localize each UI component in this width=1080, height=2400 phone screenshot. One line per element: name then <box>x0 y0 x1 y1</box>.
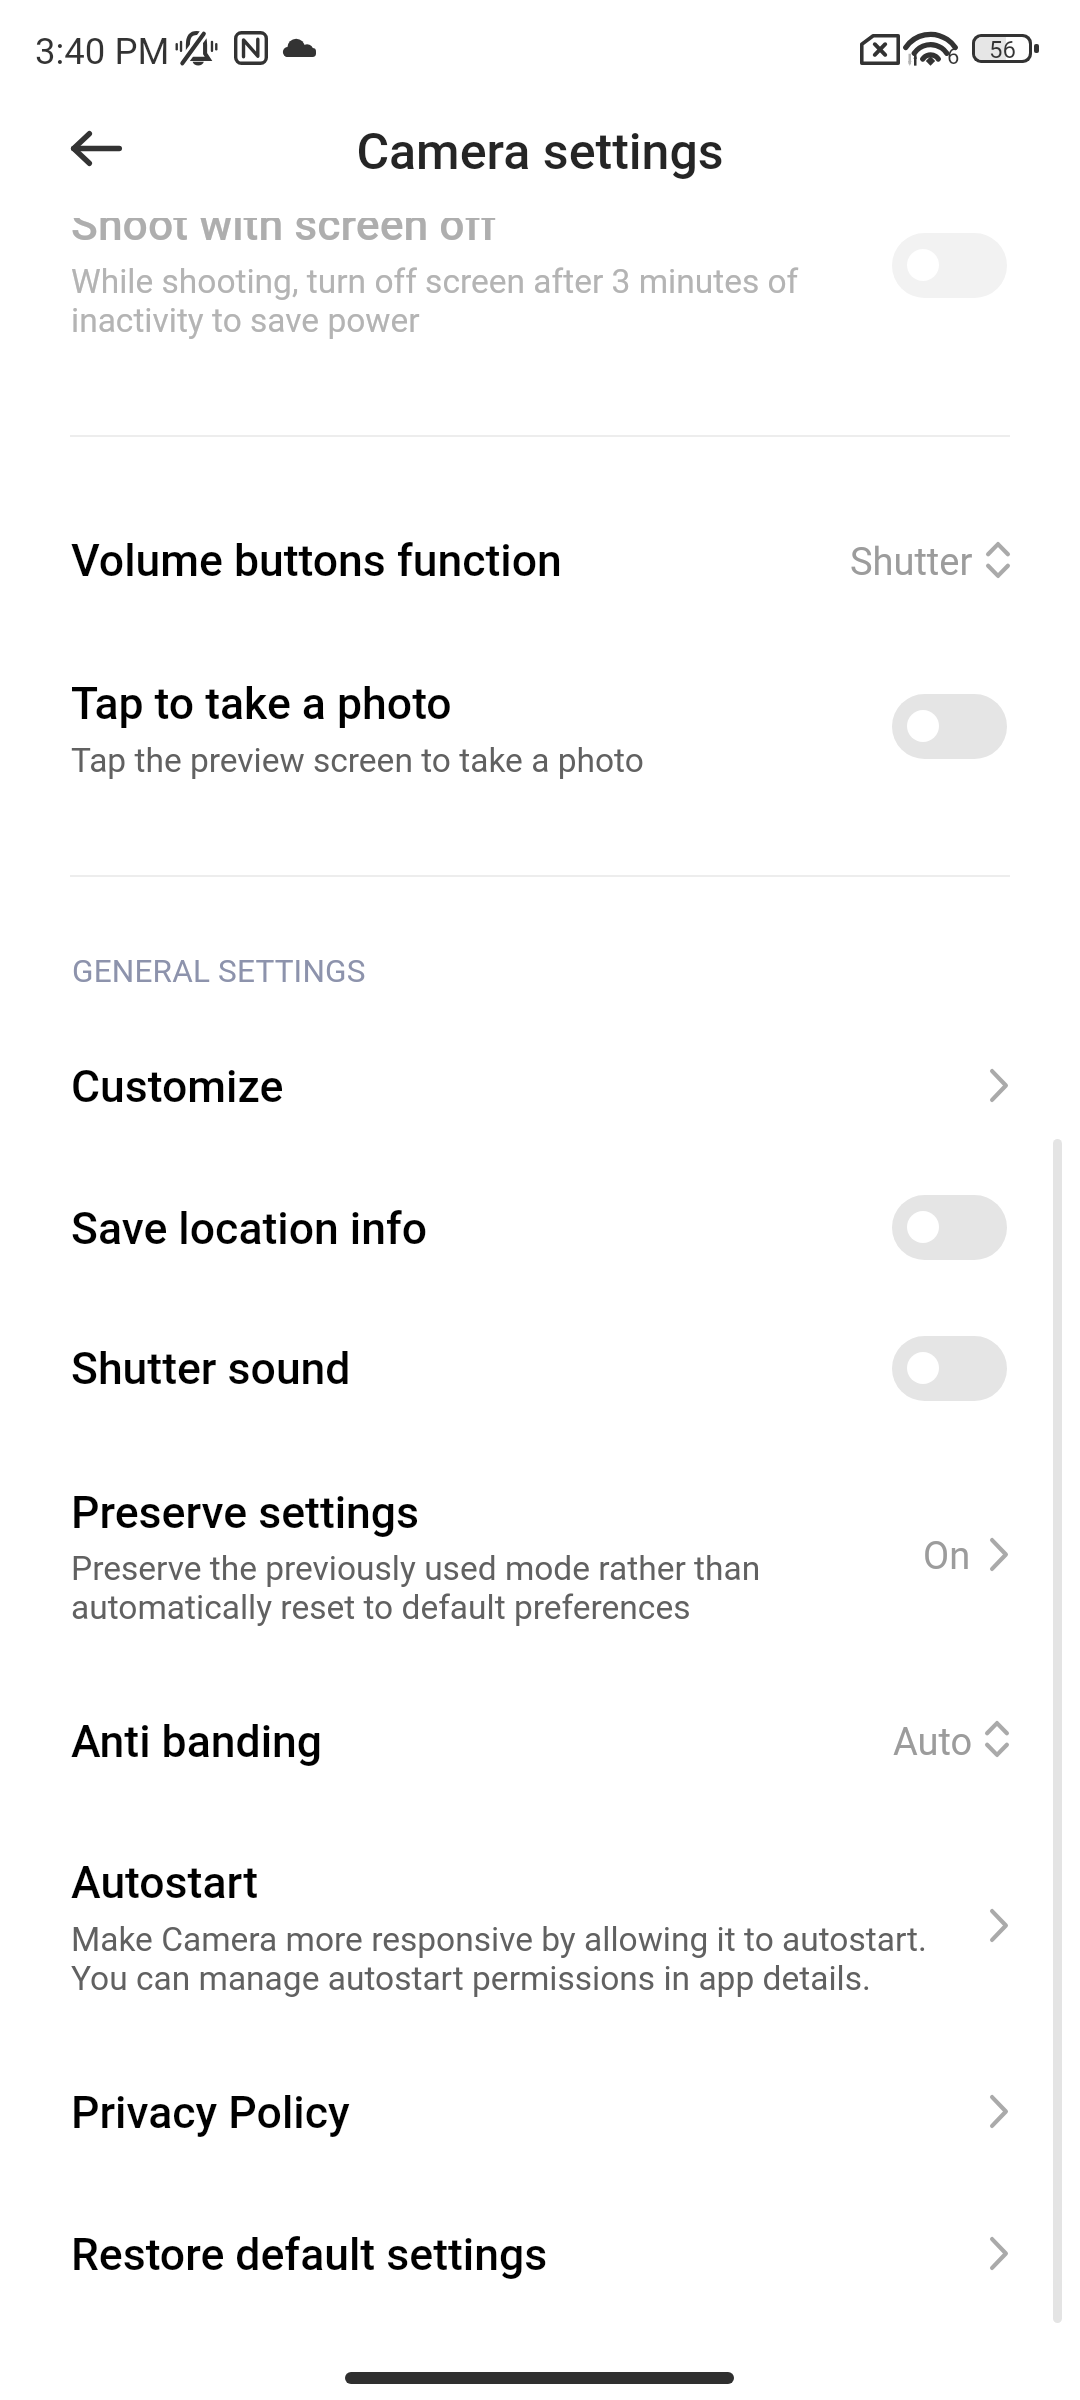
staticText: Camera settings <box>0 123 1080 182</box>
staticText: Preserve settings <box>71 1487 420 1539</box>
staticText: 3:40 PM <box>35 30 170 73</box>
staticText: Autostart <box>71 1857 259 1909</box>
button[interactable]: Volume buttons function <box>0 500 1080 630</box>
staticText: While shooting, turn off screen after 3 … <box>71 262 799 340</box>
button[interactable]: Toggle off <box>892 694 1007 759</box>
staticText: Preserve the previously used mode rather… <box>71 1549 761 1627</box>
button[interactable]: Anti banding <box>0 1682 1080 1812</box>
staticText: Shutter <box>850 540 973 585</box>
button[interactable]: Restore default settings <box>0 2188 1080 2318</box>
staticText: 56 <box>989 37 1016 59</box>
button[interactable]: Shoot with screen off <box>0 218 1080 418</box>
staticText: Shutter sound <box>71 1343 351 1395</box>
staticText: Restore default settings <box>71 2229 548 2281</box>
button[interactable]: Back <box>52 104 140 192</box>
button[interactable]: Toggle off <box>892 233 1007 298</box>
staticText: Shoot with screen off <box>71 218 497 251</box>
staticText: Privacy Policy <box>71 2087 350 2139</box>
staticText: 6 <box>947 44 960 70</box>
button[interactable]: Customize <box>0 1020 1080 1150</box>
staticText: Auto <box>893 1720 973 1765</box>
button[interactable]: Shutter sound <box>0 1302 1080 1432</box>
staticText: On <box>923 1534 971 1579</box>
staticText: Save location info <box>71 1203 428 1255</box>
staticText: Make Camera more responsive by allowing … <box>71 1920 927 1998</box>
staticText: GENERAL SETTINGS <box>72 953 366 990</box>
button[interactable]: Save location info <box>0 1162 1080 1292</box>
button[interactable]: Preserve settings <box>0 1455 1080 1655</box>
button[interactable]: Toggle off <box>892 1195 1007 1260</box>
staticText: Tap to take a photo <box>71 678 452 730</box>
staticText: Anti banding <box>71 1716 323 1768</box>
staticText: Volume buttons function <box>71 535 562 587</box>
staticText: Customize <box>71 1061 284 1113</box>
button[interactable]: Toggle off <box>892 1336 1007 1401</box>
staticText: Tap the preview screen to take a photo <box>71 741 644 780</box>
button[interactable]: Autostart <box>0 1826 1080 2036</box>
button[interactable]: Privacy Policy <box>0 2046 1080 2176</box>
button[interactable]: Tap to take a photo <box>0 650 1080 820</box>
